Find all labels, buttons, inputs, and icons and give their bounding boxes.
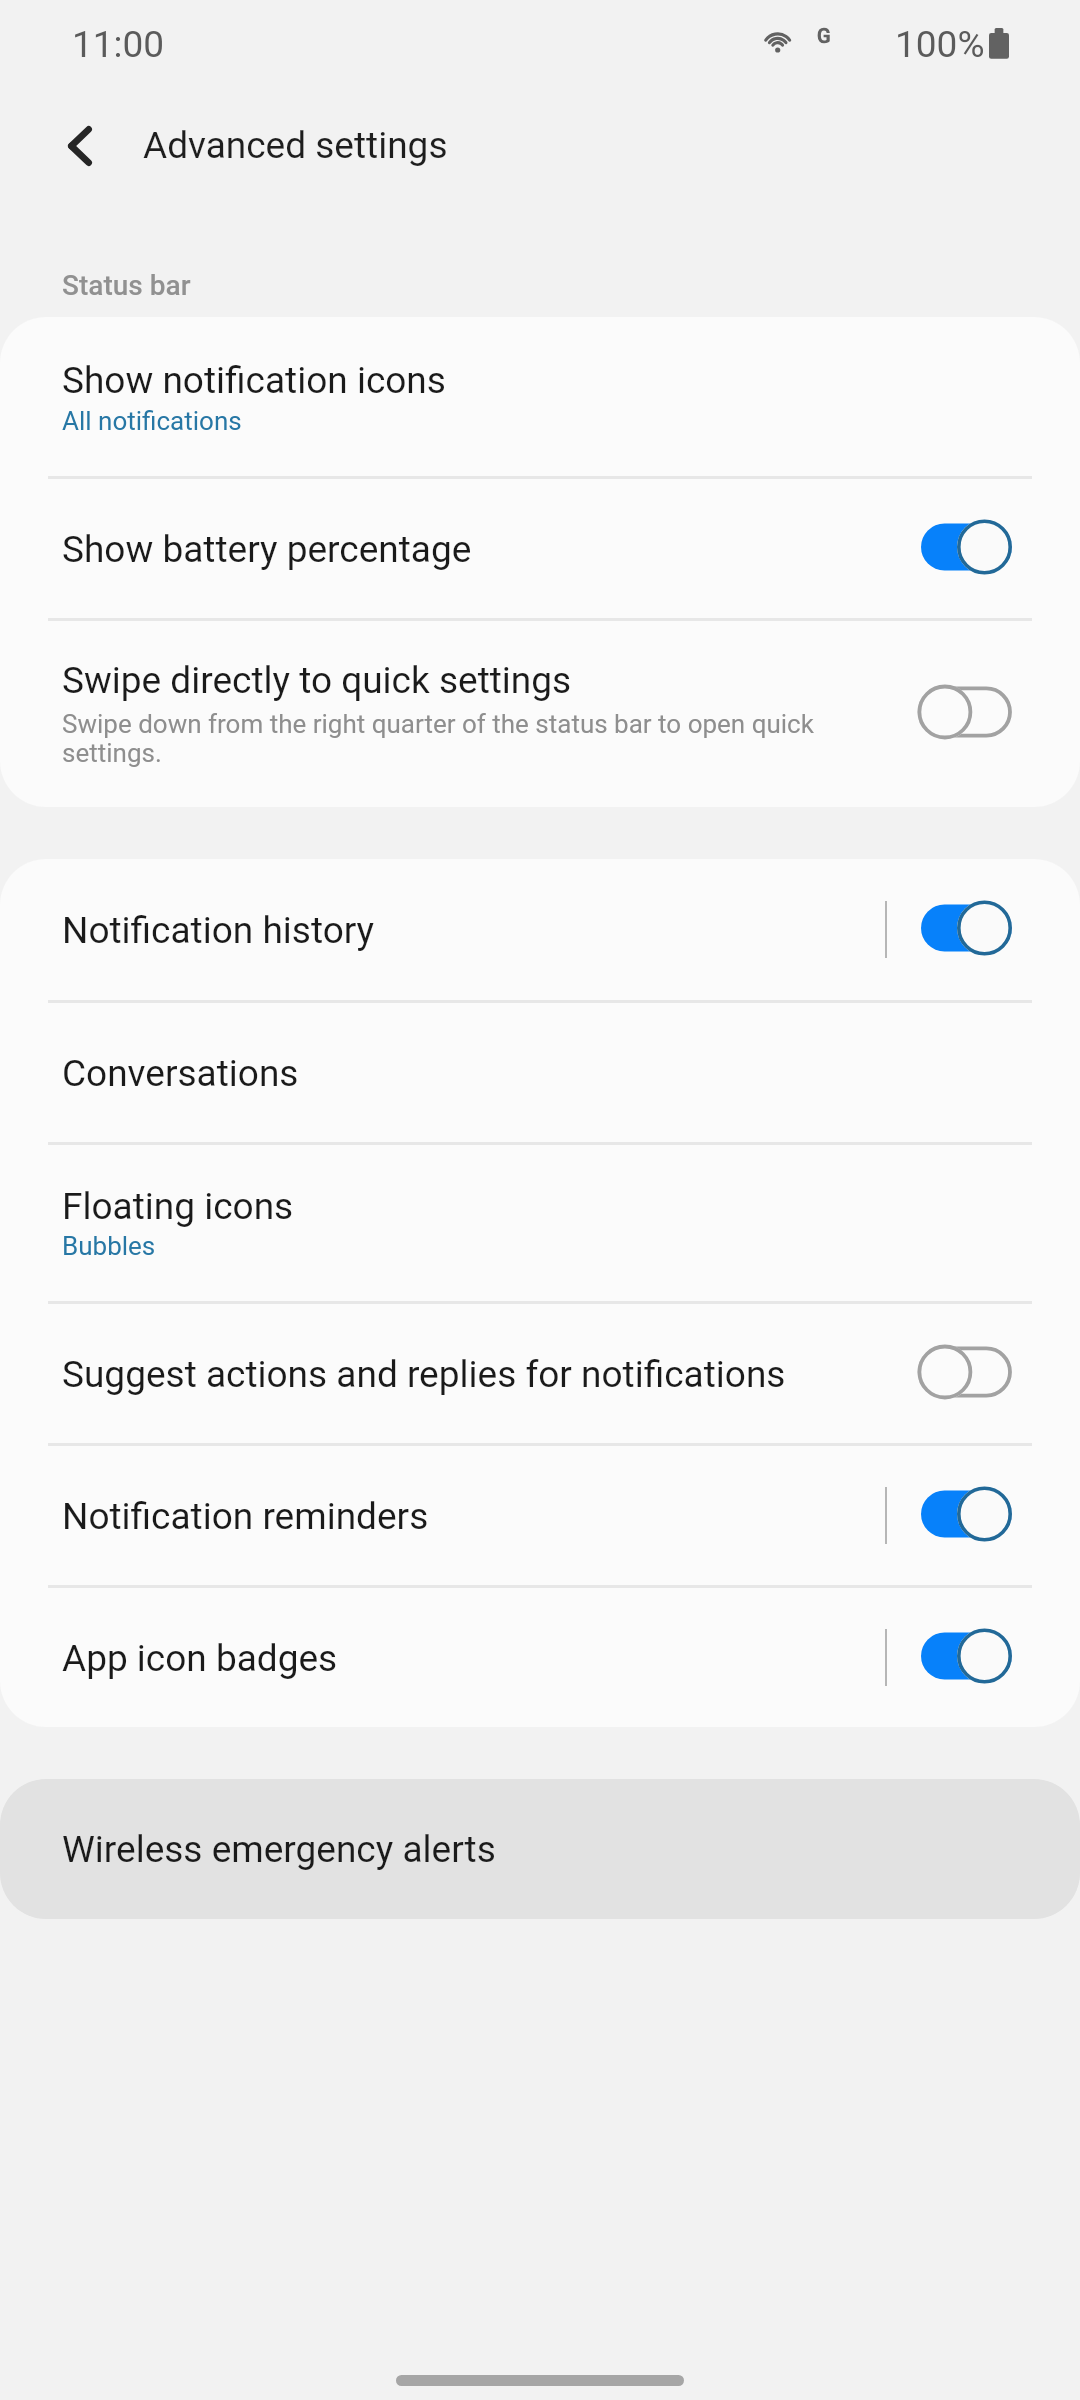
staticText: 11:00 — [72, 23, 165, 66]
button[interactable]: Notification history — [900, 859, 1020, 998]
staticText: Swipe directly to quick settings — [62, 658, 572, 702]
staticText: All notifications — [62, 407, 242, 436]
button[interactable]: Swipe directly to quick settings — [900, 619, 1020, 805]
staticText: G — [817, 24, 831, 47]
other: Wi-Fi — [759, 28, 797, 54]
button[interactable]: Suggest actions and replies for notifica… — [900, 1302, 1020, 1441]
button[interactable]: App icon badges — [0, 1588, 1080, 1727]
button[interactable]: Swipe directly to quick settings — [0, 621, 1080, 807]
staticText: Floating icons — [62, 1184, 294, 1228]
staticText: Bubbles — [62, 1232, 156, 1261]
button[interactable]: App icon badges — [900, 1586, 1020, 1725]
button[interactable]: Show notification icons — [0, 317, 1080, 476]
staticText: Conversations — [62, 1051, 299, 1095]
button[interactable]: Show battery percentage — [0, 479, 1080, 618]
button[interactable]: Floating icons — [0, 1145, 1080, 1301]
staticText: Notification reminders — [62, 1494, 429, 1538]
button[interactable]: Wireless emergency alerts — [0, 1779, 1080, 1919]
staticText: Show notification icons — [62, 358, 446, 402]
staticText: Advanced settings — [143, 123, 448, 167]
other: Battery full — [989, 28, 1009, 59]
staticText: 100% — [895, 23, 985, 66]
staticText: Notification history — [62, 908, 375, 952]
staticText: Suggest actions and replies for notifica… — [62, 1352, 786, 1396]
button[interactable]: Navigate up — [34, 100, 126, 192]
staticText: Show battery percentage — [62, 527, 472, 571]
staticText: App icon badges — [62, 1636, 338, 1680]
button[interactable]: Show battery percentage — [900, 477, 1020, 616]
button[interactable]: Conversations — [0, 1003, 1080, 1142]
button[interactable]: Notification history — [0, 859, 1080, 1000]
staticText: Status bar — [62, 269, 191, 302]
staticText: Wireless emergency alerts — [62, 1827, 496, 1871]
button[interactable]: Notification reminders — [900, 1444, 1020, 1583]
button[interactable]: Notification reminders — [0, 1446, 1080, 1585]
staticText: Swipe down from the right quarter of the… — [62, 710, 880, 768]
button[interactable]: Suggest actions and replies for notifica… — [0, 1304, 1080, 1443]
